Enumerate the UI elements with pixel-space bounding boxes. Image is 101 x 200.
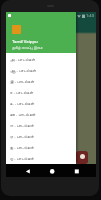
button[interactable]: ஈ - பாடல்கள் <box>6 87 76 98</box>
staticText: அ - பாடல்கள் <box>10 57 35 63</box>
staticText: உ - பாடல்கள் <box>10 101 35 107</box>
button[interactable]: Record <box>76 151 88 164</box>
staticText: தமிழ் வைப்பு இசை <box>12 45 43 50</box>
button[interactable]: உ - பாடல்கள் <box>6 98 76 109</box>
button[interactable]: இ - பாடல்கள் <box>6 76 76 87</box>
button[interactable]: ஆ - பாடல்கள் <box>6 65 76 76</box>
button[interactable]: ஏ - பாடல்கள் <box>6 131 76 142</box>
staticText: 1:40 <box>86 13 94 18</box>
staticText: ஒ - பாடல்கள் <box>10 156 34 162</box>
button[interactable]: ஐ - பாடல்கள் <box>6 142 76 153</box>
staticText: எ - பாடல்கள் <box>10 123 34 129</box>
staticText: ஆ - பாடல்கள் <box>10 68 37 74</box>
staticText: Tamil Vaippu <box>12 38 38 44</box>
staticText: ஊ - பாடல்கள் <box>10 112 36 118</box>
staticText: ஐ - பாடல்கள் <box>10 145 34 151</box>
button[interactable]: அ - பாடல்கள் <box>6 54 76 65</box>
button[interactable]: எ - பாடல்கள் <box>6 120 76 131</box>
staticText: ஈ - பாடல்கள் <box>10 90 34 96</box>
staticText: இ - பாடல்கள் <box>10 79 35 85</box>
button[interactable]: ஊ - பாடல்கள் <box>6 109 76 120</box>
button[interactable]: ஒ - பாடல்கள் <box>6 153 76 164</box>
staticText: ஏ - பாடல்கள் <box>10 134 34 140</box>
